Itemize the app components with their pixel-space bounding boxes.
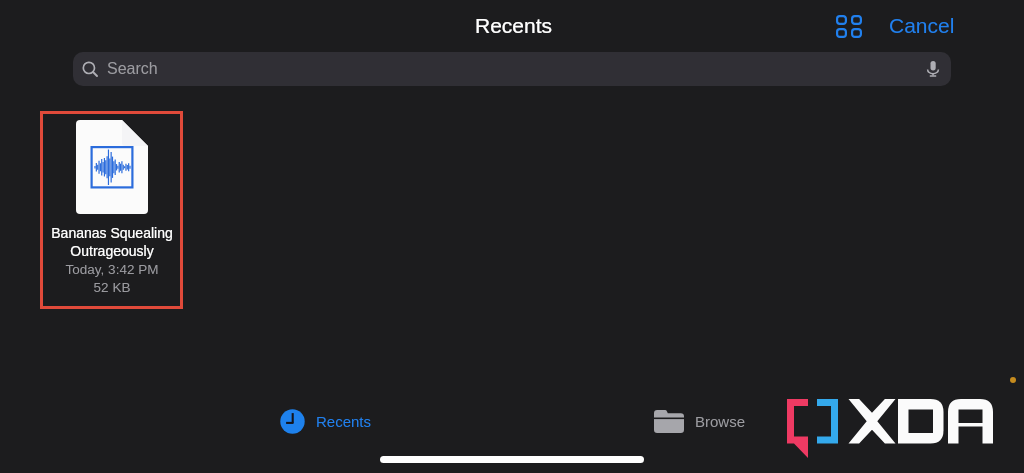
button[interactable]: Grid view xyxy=(826,7,872,45)
staticText: Recents xyxy=(316,413,372,430)
staticText: Search xyxy=(107,60,158,78)
button[interactable]: Recents xyxy=(276,405,376,437)
button[interactable]: Search xyxy=(73,52,951,86)
staticText: Cancel xyxy=(889,14,955,37)
other: Voice search xyxy=(924,60,942,78)
button[interactable]: Recents xyxy=(475,14,553,37)
staticText: 52 KB xyxy=(42,280,182,295)
staticText: Browse xyxy=(695,413,746,430)
button[interactable]: Cancel xyxy=(889,14,955,37)
staticText: Bananas Squealing Outrageously xyxy=(42,225,182,259)
staticText: Recents xyxy=(475,14,553,37)
staticText: Today, 3:42 PM xyxy=(42,262,182,277)
button[interactable]: Browse xyxy=(650,405,750,437)
button[interactable]: Bananas Squealing Outrageously xyxy=(40,111,183,309)
